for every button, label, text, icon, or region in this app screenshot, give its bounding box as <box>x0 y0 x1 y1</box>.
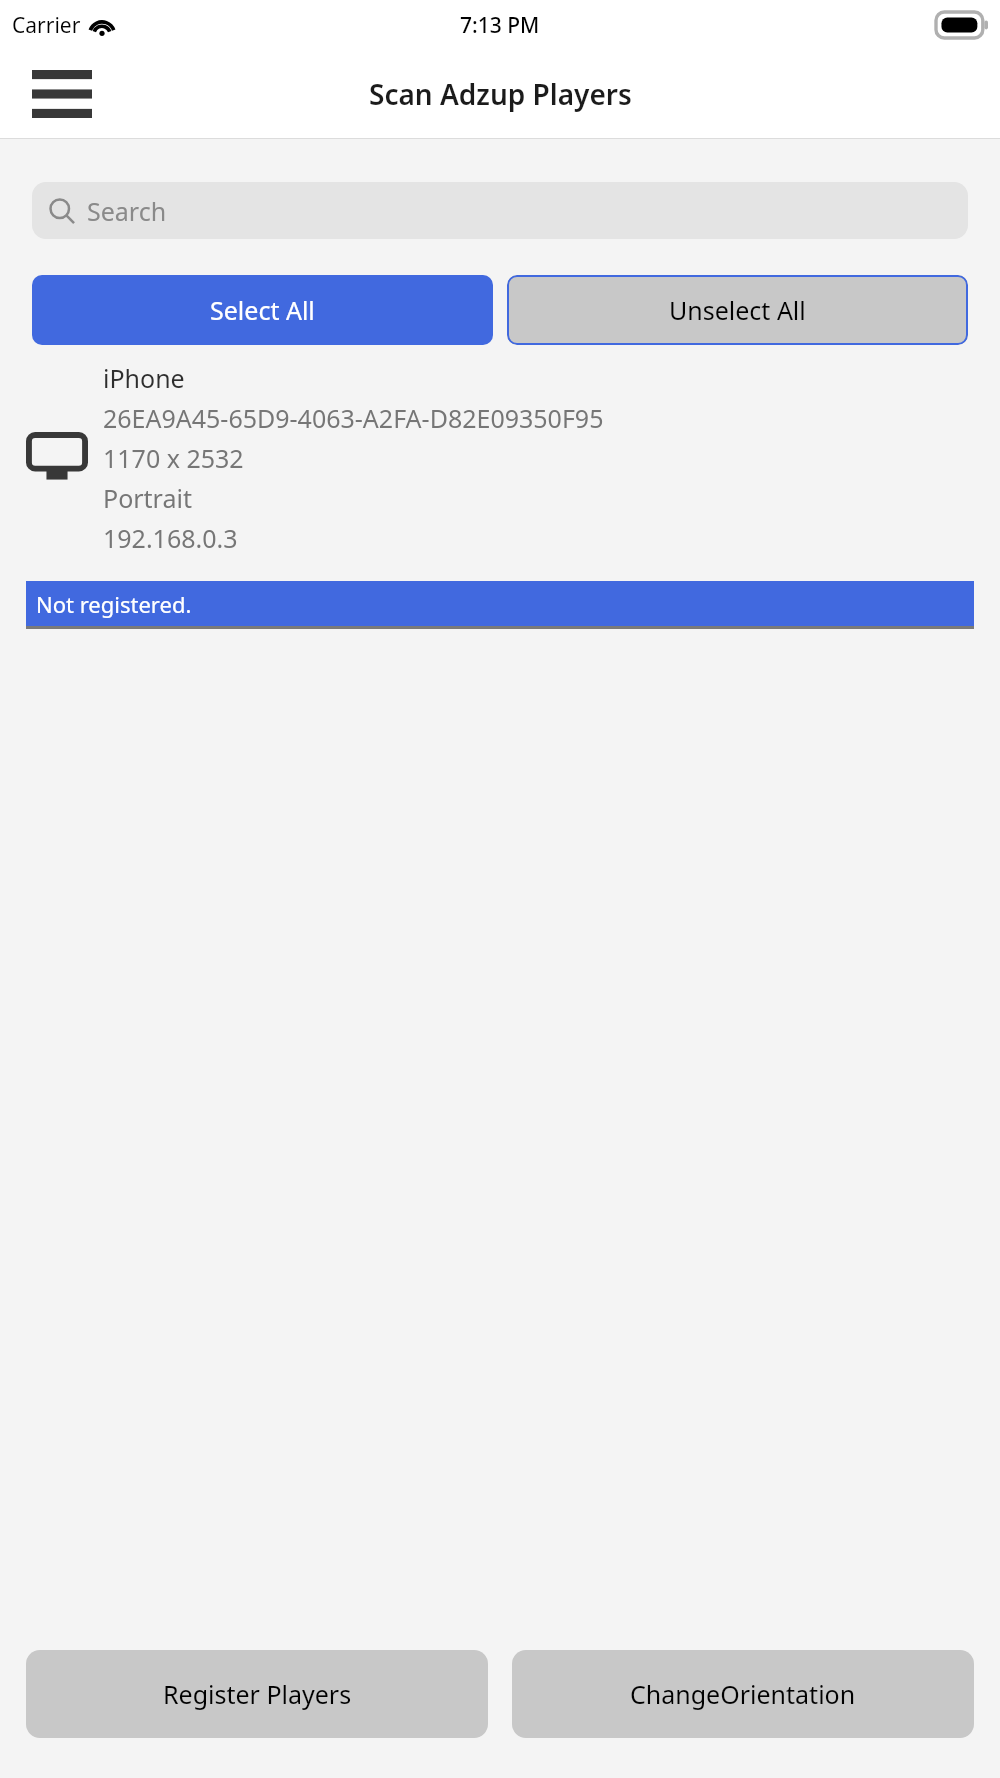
staticText: 1170 x 2532 <box>103 441 244 475</box>
staticText: iPhone <box>103 361 185 395</box>
staticText: Search <box>87 194 167 228</box>
staticText: Carrier <box>12 11 81 40</box>
button[interactable]: ChangeOrientation <box>512 1650 974 1738</box>
staticText: ChangeOrientation <box>630 1677 856 1711</box>
staticText: Portrait <box>103 481 192 515</box>
staticText: Select All <box>210 293 315 327</box>
button[interactable]: Menu <box>30 68 94 120</box>
staticText: Unselect All <box>669 293 806 327</box>
button[interactable]: Register Players <box>26 1650 488 1738</box>
button[interactable]: Not registered. <box>26 581 974 626</box>
staticText: 26EA9A45-65D9-4063-A2FA-D82E09350F95 <box>103 401 604 435</box>
button[interactable]: Unselect All <box>507 275 968 345</box>
button[interactable]: Search <box>32 182 968 239</box>
button[interactable]: iPhone <box>26 361 974 555</box>
staticText: 7:13 PM <box>460 11 540 40</box>
button[interactable]: Select All <box>32 275 493 345</box>
staticText: Register Players <box>163 1677 352 1711</box>
staticText: 192.168.0.3 <box>103 521 238 555</box>
staticText: Scan Adzup Players <box>369 75 632 113</box>
staticText: Not registered. <box>36 589 192 619</box>
